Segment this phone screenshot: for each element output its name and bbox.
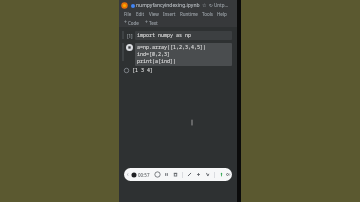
button[interactable]: Refresh bbox=[153, 170, 162, 179]
button[interactable]: Microphone bbox=[217, 170, 226, 179]
staticText: ☆ bbox=[202, 2, 207, 8]
button[interactable]: Pointer bbox=[203, 170, 212, 179]
button[interactable]: Pause bbox=[162, 170, 171, 179]
button[interactable]: Edit bbox=[134, 11, 147, 17]
button[interactable]: a=np.array([1,2,3,4,5]) bbox=[135, 43, 232, 66]
button[interactable]: Insert bbox=[161, 11, 178, 17]
button[interactable]: Colab logo bbox=[120, 1, 128, 9]
staticText: + bbox=[145, 19, 148, 26]
button[interactable]: Output bbox=[123, 67, 130, 74]
staticText: Code bbox=[128, 20, 139, 26]
button[interactable]: File bbox=[122, 11, 134, 17]
staticText: import numpy as np bbox=[137, 32, 192, 39]
staticText: + bbox=[124, 19, 127, 26]
button[interactable]: Delete bbox=[171, 170, 180, 179]
staticText: ↻ Untp… bbox=[209, 2, 228, 8]
staticText: ind=[0,2,3] bbox=[137, 51, 171, 58]
button[interactable]: Run cell bbox=[125, 31, 134, 40]
button[interactable]: Highlight bbox=[194, 170, 203, 179]
staticText: [1] bbox=[127, 33, 133, 39]
staticText: 00:57 bbox=[138, 172, 150, 178]
button[interactable]: Camera bbox=[226, 170, 229, 179]
button[interactable]: Help bbox=[215, 11, 229, 17]
staticText: Tools bbox=[202, 11, 213, 17]
staticText: numpyfancyindexing.ipynb bbox=[136, 2, 200, 9]
staticText: Help bbox=[217, 11, 227, 17]
staticText: a=np.array([1,2,3,4,5]) bbox=[137, 44, 207, 51]
button[interactable]: Tools bbox=[200, 11, 215, 17]
staticText: View bbox=[149, 11, 159, 17]
staticText: Text bbox=[149, 20, 158, 26]
button[interactable]: + bbox=[123, 19, 140, 26]
button[interactable]: Draw bbox=[185, 170, 194, 179]
button[interactable]: Stop cell bbox=[125, 43, 134, 52]
button[interactable]: Record bbox=[131, 172, 137, 178]
staticText: print(a[ind]) bbox=[137, 58, 177, 65]
button[interactable]: View bbox=[147, 11, 161, 17]
button[interactable]: + bbox=[144, 19, 159, 26]
staticText: Runtime bbox=[180, 11, 198, 17]
staticText: File bbox=[124, 11, 132, 17]
staticText: Insert bbox=[163, 11, 176, 17]
staticText: Edit bbox=[136, 11, 145, 17]
staticText: [1 3 4] bbox=[132, 67, 154, 74]
staticText: ‹ bbox=[127, 171, 129, 178]
button[interactable]: Runtime bbox=[178, 11, 200, 17]
button[interactable]: import numpy as np bbox=[135, 31, 232, 40]
